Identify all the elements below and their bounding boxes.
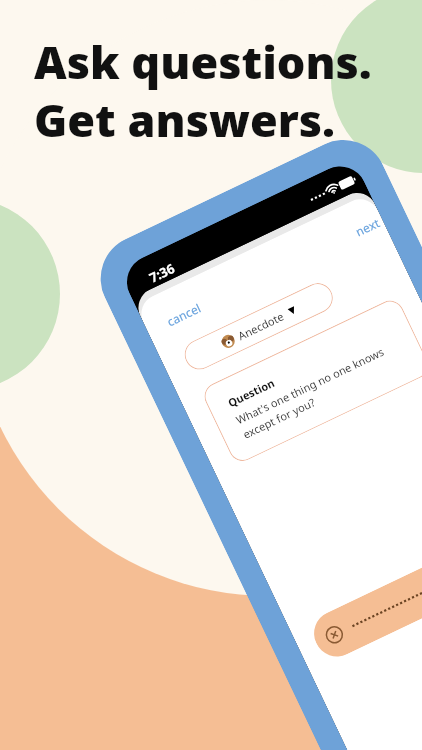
button[interactable]: Anecdote <box>180 278 338 374</box>
button[interactable]: cancel <box>155 292 212 336</box>
staticText: next <box>353 214 382 239</box>
button[interactable]: Add attachment <box>306 518 422 664</box>
staticText: What's one thing no one knows except for… <box>233 343 394 443</box>
button[interactable]: Question <box>200 296 422 466</box>
staticText: 7:36 <box>146 259 177 286</box>
button[interactable]: next <box>344 209 387 246</box>
other: Add attachment <box>322 623 346 647</box>
staticText: Question <box>225 375 278 410</box>
staticText: Get answers. <box>34 89 336 150</box>
staticText: Anecdote <box>235 309 286 343</box>
staticText: Ask questions. <box>34 31 372 92</box>
staticText: cancel <box>164 299 203 329</box>
